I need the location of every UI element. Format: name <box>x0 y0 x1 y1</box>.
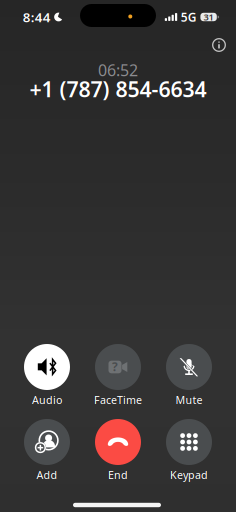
button[interactable]: Call info <box>206 32 232 58</box>
staticText: Add <box>36 468 57 482</box>
staticText: Keypad <box>170 468 208 482</box>
staticText: Audio <box>32 393 62 407</box>
button[interactable]: ? <box>83 344 153 410</box>
staticText: 5G <box>181 9 197 25</box>
staticText: 31 <box>204 11 214 23</box>
staticText: ? <box>112 359 118 375</box>
button[interactable]: Keypad <box>154 419 224 485</box>
button[interactable]: Audio <box>12 344 82 410</box>
staticText: End <box>108 468 128 482</box>
staticText: +1 (787) 854-6634 <box>29 75 206 103</box>
staticText: Mute <box>175 393 202 407</box>
staticText: 8:44 <box>23 8 51 26</box>
button[interactable]: End <box>83 419 153 485</box>
button[interactable]: Add <box>12 419 82 485</box>
button[interactable]: Mute <box>154 344 224 410</box>
staticText: FaceTime <box>94 393 142 407</box>
staticText: 06:52 <box>98 59 138 81</box>
